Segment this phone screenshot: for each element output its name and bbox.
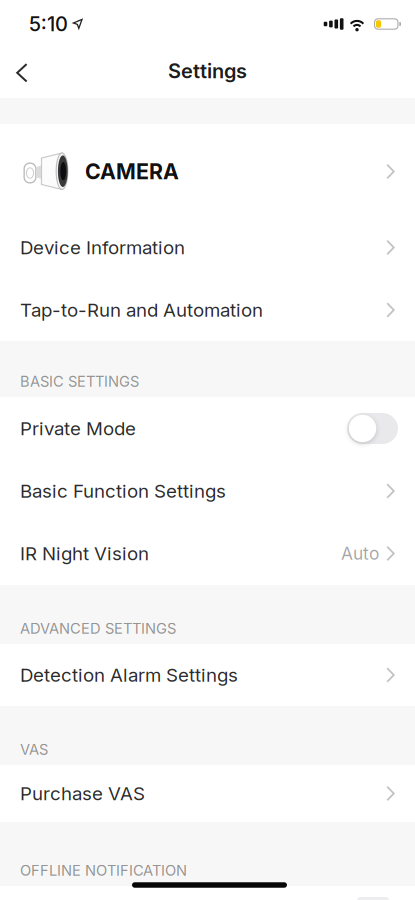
button[interactable]: Detection Alarm Settings [0, 644, 415, 706]
button[interactable]: IR Night Vision [0, 522, 415, 585]
button[interactable]: Private Mode [347, 413, 398, 444]
staticText: Private Mode [20, 417, 136, 439]
staticText: BASIC SETTINGS [20, 373, 139, 390]
staticText: Tap-to-Run and Automation [20, 299, 263, 321]
staticText: Purchase VAS [20, 782, 145, 804]
button[interactable]: Device Information [0, 216, 415, 279]
staticText: Basic Function Settings [20, 480, 226, 502]
staticText: ADVANCED SETTINGS [20, 620, 176, 637]
staticText: OFFLINE NOTIFICATION [20, 862, 187, 879]
staticText: Settings [168, 59, 247, 83]
staticText: Detection Alarm Settings [20, 664, 238, 686]
staticText: CAMERA [85, 159, 179, 184]
button[interactable]: CAMERA [0, 124, 415, 216]
staticText: IR Night Vision [20, 542, 149, 564]
staticText: Auto [341, 543, 379, 564]
button[interactable]: Basic Function Settings [0, 460, 415, 522]
button[interactable]: Tap-to-Run and Automation [0, 279, 415, 341]
button[interactable]: Purchase VAS [0, 765, 415, 822]
button[interactable]: Back [0, 53, 28, 89]
staticText: VAS [20, 741, 48, 758]
staticText: 5:10 [29, 12, 68, 36]
staticText: Device Information [20, 236, 185, 258]
